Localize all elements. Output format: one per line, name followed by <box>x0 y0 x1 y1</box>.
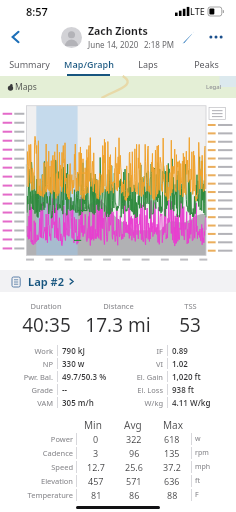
staticText: 305 m/h <box>62 397 94 408</box>
staticText: 12.7 <box>87 461 105 473</box>
staticText: 40:35 <box>22 312 71 338</box>
staticText: 88 <box>167 489 178 501</box>
staticText: June 14, 2020 <box>88 39 139 50</box>
button[interactable]: More options <box>204 25 228 49</box>
staticText: Elevation <box>40 476 73 486</box>
staticText: 81 <box>91 489 102 501</box>
staticText: TSS <box>184 301 197 311</box>
staticText: 636 <box>164 475 180 487</box>
staticText: F <box>195 490 199 500</box>
staticText: Speed <box>51 462 73 472</box>
staticText: 49.7/50.3 % <box>62 371 107 382</box>
staticText: 1,020 ft <box>172 371 201 382</box>
staticText: 1.02 <box>172 358 188 369</box>
staticText: Zach Zionts <box>88 24 148 38</box>
staticText: w <box>195 434 201 444</box>
staticText: 618 <box>164 433 180 445</box>
staticText: 322 <box>126 433 142 445</box>
staticText: Max <box>163 418 183 432</box>
staticText: Power <box>50 434 73 444</box>
staticText: El. Gain <box>136 372 163 382</box>
staticText: 330 w <box>62 358 85 369</box>
button[interactable]: Edit <box>176 25 200 49</box>
staticText: Distance <box>103 301 134 311</box>
staticText: 96 <box>129 447 140 459</box>
staticText: 3 <box>93 447 99 459</box>
staticText: 571 <box>126 475 142 487</box>
staticText: Min <box>84 418 102 432</box>
staticText: NP <box>42 359 53 369</box>
button[interactable]: Back <box>4 25 28 49</box>
staticText: 457 <box>88 475 104 487</box>
staticText: Duration <box>30 301 62 311</box>
staticText: Work <box>34 346 53 356</box>
staticText: Summary <box>9 58 50 70</box>
staticText: Map/Graph <box>64 58 114 70</box>
staticText: Lap #2 <box>28 274 64 289</box>
staticText: 0.89 <box>172 345 188 356</box>
button[interactable]: Legal <box>206 83 222 91</box>
staticText: mph <box>195 462 211 472</box>
staticText: ft <box>195 476 200 486</box>
staticText: Temperature <box>27 490 73 500</box>
staticText: 53 <box>179 312 201 338</box>
staticText: 37.2 <box>163 461 181 473</box>
staticText: 0 <box>93 433 99 445</box>
staticText: Maps <box>15 81 37 93</box>
button[interactable]: Laps <box>118 52 177 76</box>
staticText: IF <box>156 346 163 356</box>
button[interactable]: Peaks <box>177 52 236 76</box>
staticText: Grade <box>31 385 53 395</box>
staticText: 17.3 mi <box>85 312 151 338</box>
staticText: 2:18 PM <box>144 39 175 50</box>
staticText: -- <box>62 384 68 395</box>
staticText: LTE <box>190 5 205 17</box>
button[interactable]: Apple Maps <box>7 81 37 93</box>
staticText: Cadence <box>42 448 73 458</box>
staticText: 135 <box>164 447 180 459</box>
staticText: El. Loss <box>137 385 163 395</box>
staticText: 25.6 <box>125 461 143 473</box>
staticText: 4.11 W/kg <box>172 397 211 408</box>
staticText: 8:57 <box>26 4 48 19</box>
staticText: rpm <box>195 448 209 458</box>
staticText: Laps <box>138 58 158 70</box>
staticText: Pwr. Bal. <box>23 372 53 382</box>
button[interactable]: Map/Graph <box>59 52 118 76</box>
staticText: VAM <box>37 398 53 408</box>
button[interactable]: Summary <box>0 52 59 76</box>
staticText: Avg <box>124 418 142 432</box>
staticText: Peaks <box>194 58 219 70</box>
button[interactable]: Lap #2 <box>0 270 236 292</box>
staticText: W/kg <box>144 398 163 408</box>
staticText: 790 kJ <box>62 345 85 356</box>
staticText: 86 <box>129 489 140 501</box>
staticText: 938 ft <box>172 384 195 395</box>
staticText: VI <box>155 359 163 369</box>
